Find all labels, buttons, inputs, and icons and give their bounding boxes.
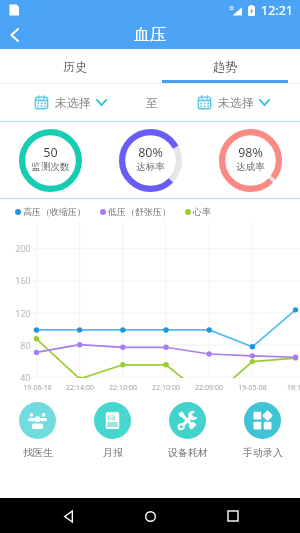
staticText: 达标率 [136, 161, 165, 173]
button[interactable]: 趋势 [150, 49, 300, 83]
staticText: 50 [43, 144, 58, 161]
staticText: 手动录入 [243, 446, 283, 458]
staticText: 至 [146, 95, 158, 110]
staticText: 高压（收缩压） [23, 206, 86, 217]
staticText: 未选择 [218, 95, 254, 110]
button[interactable]: 手动录入 [225, 388, 300, 458]
staticText: 达成率 [236, 161, 265, 173]
staticText: 160 [15, 274, 31, 286]
button[interactable]: 80% [100, 122, 200, 198]
button[interactable]: Recents [218, 501, 248, 531]
button[interactable]: 未选择 [34, 95, 107, 110]
staticText: 120 [15, 307, 31, 319]
button[interactable]: 50 [0, 122, 100, 198]
button[interactable]: 找医生 [0, 388, 75, 458]
button[interactable]: 设备耗材 [150, 388, 225, 458]
button[interactable]: Back [53, 501, 83, 531]
staticText: 22:09:00 [195, 383, 223, 393]
button[interactable]: Back [0, 20, 30, 49]
staticText: 98% [238, 144, 263, 161]
staticText: 22:10:00 [152, 383, 180, 393]
staticText: 监测次数 [31, 161, 70, 173]
staticText: 22:10:00 [109, 383, 137, 393]
staticText: 月报 [103, 446, 123, 458]
staticText: 40 [20, 371, 31, 383]
staticText: 趋势 [213, 59, 237, 74]
staticText: 心率 [193, 206, 211, 217]
staticText: 18:10 [287, 383, 300, 393]
staticText: 200 [15, 242, 31, 254]
button[interactable]: 98% [200, 122, 300, 198]
staticText: 19-05-08 [238, 383, 267, 393]
staticText: 12:21 [261, 2, 293, 19]
staticText: 设备耗材 [168, 446, 208, 458]
button[interactable]: Home [135, 501, 165, 531]
staticText: 80 [20, 339, 31, 351]
staticText: 未选择 [55, 95, 91, 110]
staticText: 低压（舒张压） [108, 206, 171, 217]
button[interactable]: 历史 [0, 49, 150, 83]
staticText: 80% [138, 144, 163, 161]
button[interactable]: 月报 [75, 388, 150, 458]
staticText: 历史 [63, 59, 87, 74]
staticText: 19-06-18 [23, 383, 52, 393]
staticText: 22:14:00 [66, 383, 94, 393]
staticText: 找医生 [23, 446, 53, 458]
staticText: 血压 [134, 25, 166, 45]
button[interactable]: 未选择 [197, 95, 270, 110]
